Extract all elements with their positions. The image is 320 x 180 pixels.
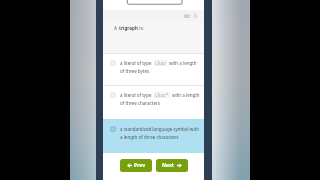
staticText: char	[155, 60, 166, 66]
button[interactable]: Next	[156, 159, 188, 172]
staticText: a literal of type	[120, 60, 152, 66]
staticText: char*	[155, 92, 169, 98]
button[interactable]: Prev	[120, 159, 152, 172]
staticText: with a length	[172, 92, 200, 98]
staticText: is:	[138, 25, 144, 31]
staticText: a literal of type	[120, 92, 152, 98]
staticText: Prev	[134, 162, 145, 169]
button[interactable]: a literal of type	[103, 53, 204, 85]
button[interactable]: a standardized language symbol with	[103, 119, 204, 153]
staticText: trigraph	[119, 25, 138, 31]
button[interactable]: Bookmark	[184, 14, 191, 18]
staticText: Next	[162, 162, 175, 169]
button[interactable]: a literal of type	[103, 85, 204, 120]
button[interactable]: Lock	[193, 13, 198, 18]
staticText: A	[114, 25, 119, 31]
staticText: a standardized language symbol with	[120, 126, 199, 132]
staticText: a length of three characters	[120, 134, 179, 140]
staticText: of three bytes	[120, 68, 150, 74]
staticText: of three characters	[120, 100, 160, 106]
staticText: with a length	[169, 60, 197, 66]
